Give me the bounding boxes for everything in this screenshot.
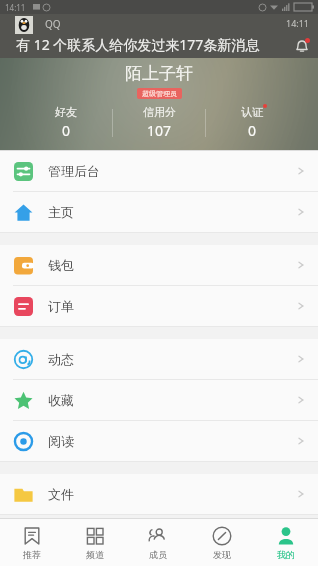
button[interactable]: 收藏	[0, 380, 318, 420]
button[interactable]: 成员	[126, 519, 190, 566]
staticText: 阅读	[48, 433, 74, 449]
staticText: 陌上子轩	[125, 63, 193, 84]
staticText: 超级管理员	[142, 89, 177, 98]
staticText: 订单	[48, 298, 74, 314]
staticText: 频道	[86, 549, 104, 560]
staticText: 发现	[213, 549, 231, 560]
staticText: 107	[147, 121, 172, 140]
button[interactable]: 认证	[206, 105, 298, 140]
staticText: 好友	[55, 105, 77, 119]
staticText: 认证	[241, 105, 263, 119]
staticText: 推荐	[23, 549, 41, 560]
staticText: 信用分	[143, 105, 176, 119]
staticText: 0	[248, 121, 257, 140]
staticText: 文件	[48, 486, 74, 502]
button[interactable]: 信用分	[113, 105, 205, 140]
button[interactable]: 订单	[0, 286, 318, 326]
staticText: 14:11	[286, 17, 310, 29]
staticText: 成员	[149, 549, 167, 560]
staticText: 管理后台	[48, 163, 100, 179]
staticText: QQ	[45, 17, 61, 31]
staticText: 主页	[48, 204, 74, 220]
staticText: 收藏	[48, 392, 74, 408]
button[interactable]: 我的	[254, 519, 318, 566]
button[interactable]: QQ	[0, 14, 318, 58]
staticText: 动态	[48, 351, 74, 367]
staticText: 钱包	[48, 257, 74, 273]
button[interactable]: 动态	[0, 339, 318, 379]
button[interactable]: 钱包	[0, 245, 318, 285]
button[interactable]: 发现	[190, 519, 254, 566]
staticText: 有 12 个联系人给你发过来177条新消息	[16, 35, 260, 54]
button[interactable]: 好友	[20, 105, 112, 140]
button[interactable]: 频道	[63, 519, 126, 566]
button[interactable]: 阅读	[0, 421, 318, 461]
staticText: 14:11	[5, 2, 26, 13]
button[interactable]: 推荐	[0, 519, 63, 566]
staticText: 0	[62, 121, 71, 140]
button[interactable]: 主页	[0, 192, 318, 232]
staticText: 我的	[277, 549, 295, 560]
button[interactable]: 文件	[0, 474, 318, 514]
button[interactable]: 管理后台	[0, 151, 318, 191]
